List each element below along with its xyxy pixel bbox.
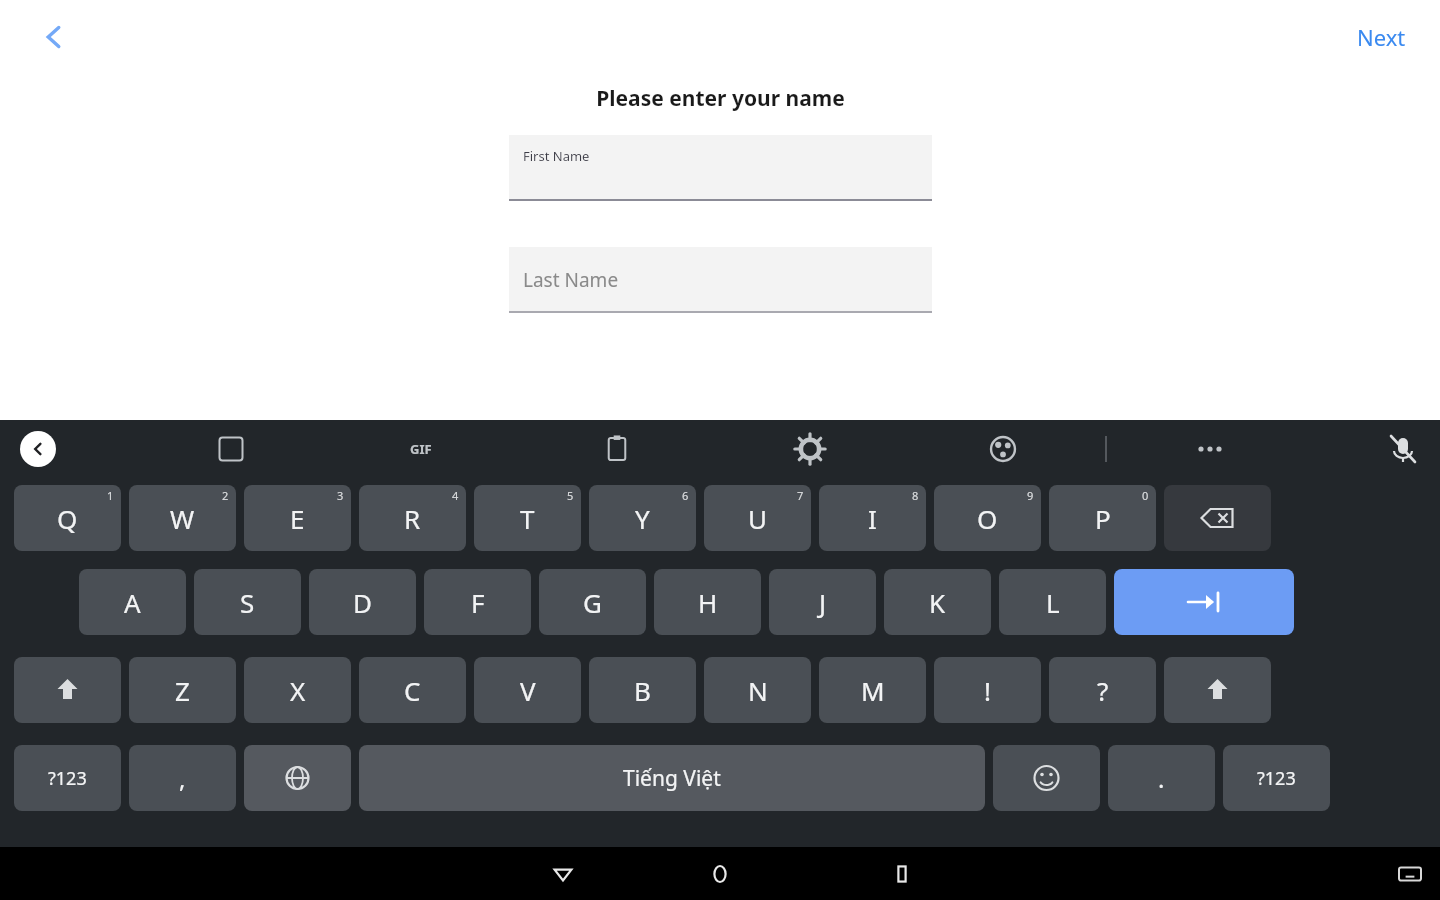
button[interactable]: X [244, 657, 351, 723]
staticText: GIF [410, 440, 432, 458]
button[interactable]: Switch keyboard [1388, 852, 1432, 896]
button[interactable]: First Name [509, 135, 932, 201]
button[interactable]: Backspace [1164, 485, 1271, 551]
staticText: V [520, 673, 536, 708]
button[interactable]: E [244, 485, 351, 551]
staticText: Tiếng Việt [623, 764, 721, 793]
staticText: 9 [1027, 488, 1034, 503]
staticText: I [868, 501, 877, 536]
staticText: 0 [1142, 488, 1149, 503]
staticText: B [634, 673, 651, 708]
button[interactable]: D [309, 569, 416, 635]
button[interactable]: Shift [14, 657, 121, 723]
staticText: ?123 [48, 766, 87, 791]
button[interactable]: , [129, 745, 236, 811]
button[interactable]: Q [14, 485, 121, 551]
staticText: 4 [452, 488, 459, 503]
staticText: S [240, 585, 255, 620]
button[interactable]: C [359, 657, 466, 723]
staticText: Please enter your name [596, 84, 845, 113]
button[interactable]: O [934, 485, 1041, 551]
button[interactable]: GIF [398, 426, 444, 472]
staticText: . [1158, 762, 1165, 795]
staticText: Y [635, 501, 650, 536]
staticText: K [929, 585, 946, 620]
button[interactable]: ?123 [1223, 745, 1330, 811]
staticText: ?123 [1257, 766, 1296, 791]
button[interactable]: I [819, 485, 926, 551]
button[interactable]: L [999, 569, 1106, 635]
staticText: L [1046, 585, 1060, 620]
button[interactable]: Y [589, 485, 696, 551]
button[interactable]: Clipboard [594, 426, 640, 472]
button[interactable]: U [704, 485, 811, 551]
button[interactable]: ! [934, 657, 1041, 723]
staticText: 6 [682, 488, 689, 503]
staticText: A [124, 585, 141, 620]
button[interactable]: M [819, 657, 926, 723]
staticText: W [170, 501, 195, 536]
button[interactable]: K [884, 569, 991, 635]
staticText: G [583, 585, 602, 620]
button[interactable]: G [539, 569, 646, 635]
staticText: J [819, 585, 827, 620]
staticText: X [290, 673, 306, 708]
button[interactable]: N [704, 657, 811, 723]
button[interactable]: More options [1187, 426, 1233, 472]
staticText: F [471, 585, 485, 620]
staticText: P [1095, 501, 1111, 536]
button[interactable]: ?123 [14, 745, 121, 811]
button[interactable]: Home [696, 850, 744, 898]
staticText: D [353, 585, 372, 620]
staticText: , [179, 762, 186, 795]
button[interactable]: Back [26, 9, 82, 65]
button[interactable]: Stickers [208, 426, 254, 472]
button[interactable]: P [1049, 485, 1156, 551]
staticText: O [977, 501, 998, 536]
button[interactable]: Z [129, 657, 236, 723]
button[interactable]: . [1108, 745, 1215, 811]
staticText: E [290, 501, 305, 536]
button[interactable]: Change language [244, 745, 351, 811]
staticText: U [748, 501, 768, 536]
button[interactable]: Last Name [509, 247, 932, 313]
staticText: 3 [337, 488, 344, 503]
staticText: H [698, 585, 718, 620]
staticText: M [861, 673, 885, 708]
staticText: ? [1097, 673, 1109, 708]
button[interactable]: S [194, 569, 301, 635]
staticText: Q [57, 501, 78, 536]
staticText: Last Name [523, 267, 619, 293]
button[interactable]: B [589, 657, 696, 723]
button[interactable]: Back [539, 850, 587, 898]
button[interactable]: Shift [1164, 657, 1271, 723]
button[interactable]: J [769, 569, 876, 635]
staticText: Z [175, 673, 190, 708]
button[interactable]: W [129, 485, 236, 551]
button[interactable]: F [424, 569, 531, 635]
button[interactable]: Next [1347, 14, 1416, 60]
staticText: 7 [797, 488, 804, 503]
button[interactable]: Themes [980, 426, 1026, 472]
button[interactable]: Tiếng Việt [359, 745, 985, 811]
button[interactable]: H [654, 569, 761, 635]
button[interactable]: A [79, 569, 186, 635]
button[interactable]: Settings [787, 426, 833, 472]
staticText: ! [984, 673, 991, 708]
button[interactable]: R [359, 485, 466, 551]
button[interactable]: V [474, 657, 581, 723]
staticText: 5 [567, 488, 574, 503]
button[interactable]: Expand toolbar [20, 431, 56, 467]
button[interactable]: Voice input off [1380, 426, 1426, 472]
staticText: N [748, 673, 768, 708]
staticText: 2 [222, 488, 229, 503]
button[interactable]: Recent apps [878, 850, 926, 898]
button[interactable]: Tab to next field [1114, 569, 1294, 635]
button[interactable]: T [474, 485, 581, 551]
button[interactable]: Emoji [993, 745, 1100, 811]
staticText: Next [1357, 22, 1406, 52]
staticText: 1 [107, 488, 114, 503]
button[interactable]: ? [1049, 657, 1156, 723]
staticText: T [520, 501, 535, 536]
staticText: 8 [912, 488, 919, 503]
